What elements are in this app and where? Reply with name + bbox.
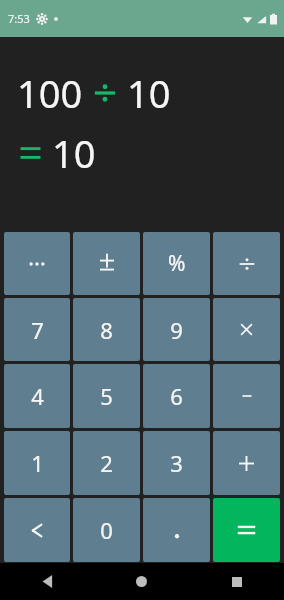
staticText: 5: [100, 381, 113, 411]
button[interactable]: 9: [143, 298, 210, 361]
button[interactable]: Plus minus: [73, 232, 140, 295]
staticText: 1: [31, 448, 44, 478]
staticText: 10: [52, 127, 96, 179]
button[interactable]: More: [4, 232, 70, 295]
button[interactable]: Decimal point: [143, 498, 210, 562]
button[interactable]: 7: [4, 298, 70, 361]
button[interactable]: 5: [73, 364, 140, 428]
button[interactable]: Divide: [213, 232, 280, 295]
staticText: 8: [100, 315, 113, 345]
button[interactable]: Minus: [213, 364, 280, 428]
button[interactable]: Recent apps: [189, 563, 284, 600]
button[interactable]: Multiply: [213, 298, 280, 361]
staticText: %: [168, 249, 186, 278]
button[interactable]: Home: [94, 563, 189, 600]
staticText: 10: [127, 67, 171, 119]
button[interactable]: Percent: [143, 232, 210, 295]
button[interactable]: Backspace: [4, 498, 70, 562]
button[interactable]: 2: [73, 431, 140, 495]
staticText: 9: [170, 315, 183, 345]
button[interactable]: 8: [73, 298, 140, 361]
button[interactable]: Back: [0, 563, 94, 600]
staticText: 6: [170, 381, 183, 411]
button[interactable]: 6: [143, 364, 210, 428]
button[interactable]: Plus: [213, 431, 280, 495]
button[interactable]: 0: [73, 498, 140, 562]
staticText: 3: [170, 448, 183, 478]
staticText: 2: [100, 448, 113, 478]
button[interactable]: Equals: [213, 498, 280, 562]
staticText: 7: [31, 315, 44, 345]
button[interactable]: 4: [4, 364, 70, 428]
button[interactable]: 1: [4, 431, 70, 495]
button[interactable]: 3: [143, 431, 210, 495]
staticText: 0: [100, 515, 113, 545]
staticText: 100: [17, 67, 83, 119]
staticText: 7:53: [8, 11, 30, 26]
staticText: 4: [31, 381, 44, 411]
